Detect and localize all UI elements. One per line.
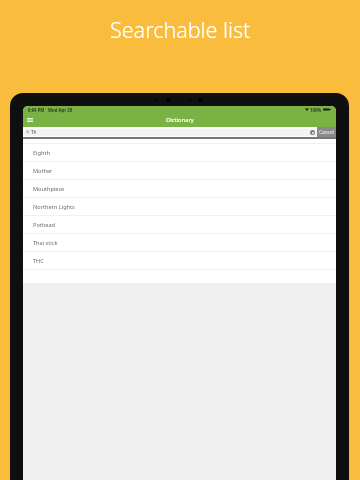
staticText: Wed Apr 29 [48,107,73,113]
button[interactable]: Th [23,127,317,137]
staticText: THC [33,257,44,265]
button[interactable]: Pothead [23,216,336,234]
staticText: Th [31,129,37,135]
button[interactable]: Open navigation menu [25,115,34,124]
button[interactable]: Thai stick [23,234,336,252]
button[interactable]: Mother [23,162,336,180]
staticText: Pothead [33,221,55,229]
staticText: Northern Lights [33,203,75,211]
staticText: Eighth [33,149,50,157]
staticText: Dictionary [166,116,194,124]
button[interactable]: Clear search text [310,130,315,135]
button[interactable]: Northern Lights [23,198,336,216]
button[interactable]: Cancel [317,127,336,137]
staticText: Mother [33,167,53,175]
button[interactable]: Eighth [23,144,336,162]
staticText: Mouthpiece [33,185,65,193]
staticText: 100% [310,107,322,113]
staticText: Thai stick [33,239,58,247]
button[interactable]: Mouthpiece [23,180,336,198]
staticText: Searchable list [110,15,251,44]
staticText: 6:04 PM [28,107,45,113]
button[interactable]: THC [23,252,336,270]
staticText: Cancel [319,129,334,136]
